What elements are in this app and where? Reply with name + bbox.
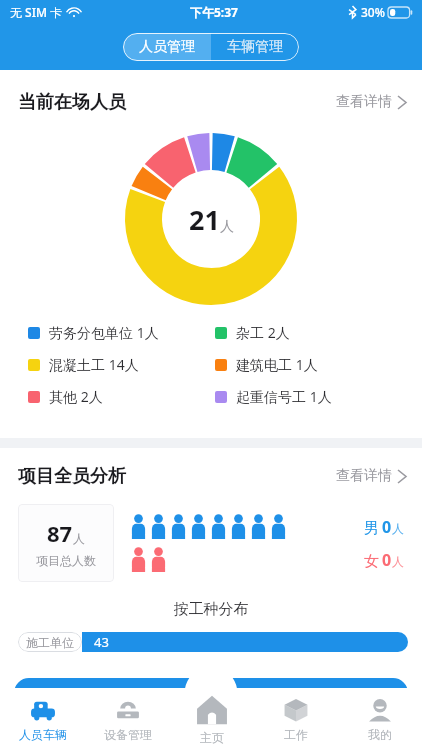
staticText: 按工种分布 — [0, 600, 422, 619]
button[interactable]: 我的 — [338, 688, 422, 750]
staticText: 杂工 2人 — [236, 323, 290, 342]
staticText: 我的 — [368, 727, 392, 742]
button[interactable]: 杂工 2人 — [215, 323, 402, 342]
staticText: 人 — [220, 218, 234, 236]
button[interactable]: 工作 — [254, 688, 338, 750]
staticText: 查看详情 — [336, 93, 392, 111]
button[interactable]: 主页 — [170, 688, 254, 750]
button[interactable]: 人员管理 — [123, 33, 211, 61]
staticText: 查看详情 — [336, 467, 392, 485]
button[interactable]: 劳务分包单位 1人 — [28, 323, 215, 342]
staticText: 起重信号工 1人 — [236, 387, 332, 406]
button[interactable]: 设备管理 — [85, 688, 170, 750]
staticText: 30% — [361, 4, 385, 20]
staticText: 其他 2人 — [49, 387, 103, 406]
staticText: 混凝土工 14人 — [49, 355, 139, 374]
button[interactable]: 87 — [18, 504, 114, 582]
staticText: 车辆管理 — [227, 38, 283, 56]
staticText: 人员管理 — [139, 38, 195, 56]
button[interactable]: 人员车辆 — [0, 688, 85, 750]
button[interactable]: 混凝土工 14人 — [28, 355, 215, 374]
staticText: 男 — [364, 519, 379, 538]
staticText: 87 — [47, 518, 73, 548]
button[interactable]: 查看详情 — [336, 93, 406, 111]
button[interactable]: 起重信号工 1人 — [215, 387, 402, 406]
button[interactable]: 车辆管理 — [211, 33, 299, 61]
staticText: 0 — [382, 549, 392, 571]
staticText: 女 — [364, 552, 379, 571]
button[interactable]: 建筑电工 1人 — [215, 355, 402, 374]
staticText: 施工单位 — [26, 635, 74, 650]
staticText: 建筑电工 1人 — [236, 355, 318, 374]
staticText: 劳务分包单位 1人 — [49, 323, 159, 342]
button[interactable]: 查看详情 — [336, 467, 406, 485]
staticText: 人员车辆 — [19, 727, 67, 742]
staticText: 主页 — [200, 730, 224, 745]
staticText: 工作 — [284, 727, 308, 742]
button[interactable]: 其他 2人 — [28, 387, 215, 406]
staticText: 当前在场人员 — [18, 91, 126, 114]
staticText: 项目全员分析 — [18, 465, 126, 488]
staticText: 项目总人数 — [36, 553, 96, 568]
staticText: 下午5:37 — [190, 4, 238, 20]
staticText: 0 — [382, 516, 392, 538]
staticText: 人 — [392, 554, 404, 569]
staticText: 人 — [73, 531, 85, 546]
staticText: 21 — [189, 201, 220, 238]
staticText: 无 SIM 卡 — [10, 4, 63, 20]
staticText: 人 — [392, 521, 404, 536]
staticText: 43 — [94, 633, 109, 651]
staticText: 设备管理 — [104, 727, 152, 742]
